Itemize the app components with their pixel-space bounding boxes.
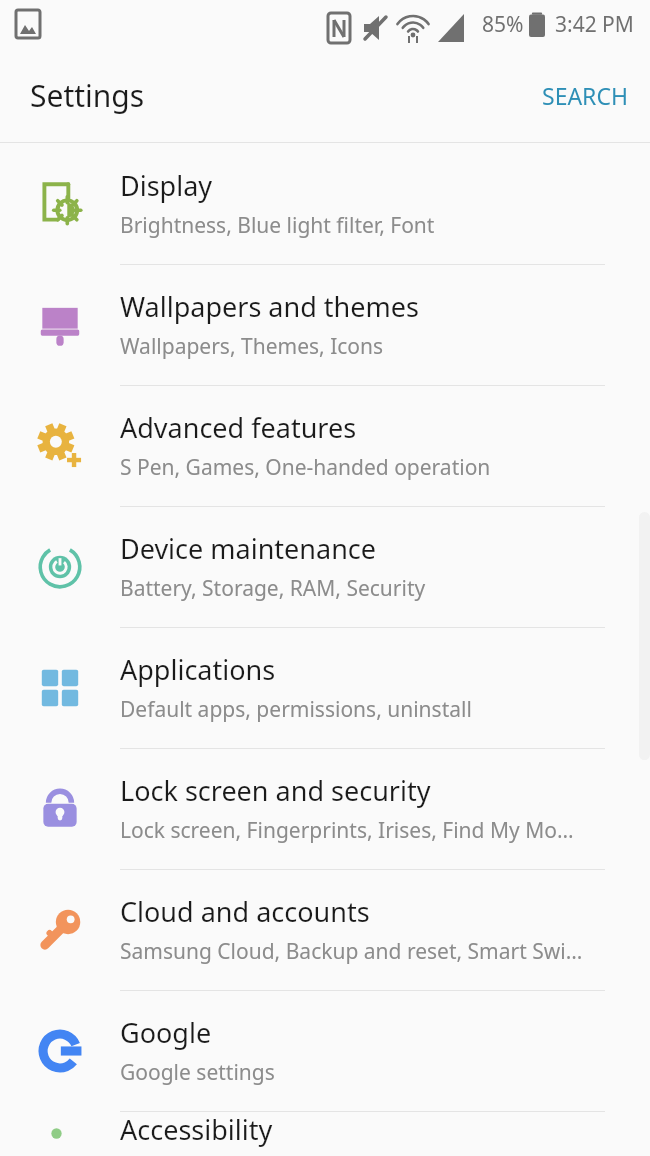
button[interactable]: Wallpapers and themes <box>0 264 650 385</box>
button[interactable]: Display <box>0 143 650 264</box>
staticText: 85% <box>482 10 524 39</box>
staticText: Applications <box>120 651 276 688</box>
button[interactable]: Advanced features <box>0 385 650 506</box>
staticText: 3:42 PM <box>555 10 634 39</box>
button[interactable]: Device maintenance <box>0 506 650 627</box>
staticText: Google settings <box>120 1058 275 1087</box>
staticText: S Pen, Games, One-handed operation <box>120 453 491 482</box>
staticText: Device maintenance <box>120 530 377 567</box>
staticText: Display <box>120 167 213 204</box>
staticText: Lock screen, Fingerprints, Irises, Find … <box>120 816 574 845</box>
staticText: Settings <box>30 75 145 116</box>
staticText: Samsung Cloud, Backup and reset, Smart S… <box>120 937 583 966</box>
button[interactable]: Cloud and accounts <box>0 869 650 990</box>
staticText: Wallpapers and themes <box>120 288 419 325</box>
staticText: Wallpapers, Themes, Icons <box>120 332 384 361</box>
staticText: Lock screen and security <box>120 772 431 809</box>
button[interactable]: Google <box>0 990 650 1111</box>
button[interactable]: Accessibility <box>0 1111 650 1156</box>
staticText: Cloud and accounts <box>120 893 370 930</box>
staticText: Accessibility <box>120 1111 273 1148</box>
button[interactable]: SEARCH <box>520 66 650 125</box>
staticText: SEARCH <box>542 80 628 111</box>
button[interactable]: Lock screen and security <box>0 748 650 869</box>
button[interactable]: Applications <box>0 627 650 748</box>
staticText: Brightness, Blue light filter, Font <box>120 211 435 240</box>
staticText: Google <box>120 1014 212 1051</box>
staticText: Default apps, permissions, uninstall <box>120 695 472 724</box>
staticText: Battery, Storage, RAM, Security <box>120 574 426 603</box>
staticText: Advanced features <box>120 409 357 446</box>
